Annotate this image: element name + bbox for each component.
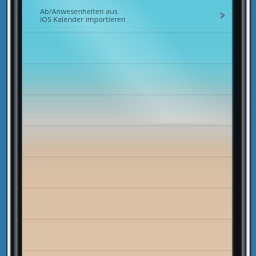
staticText: Ab/Anwesenheiten aus iOS Kalender import… (40, 6, 126, 24)
button[interactable] (22, 185, 234, 216)
button[interactable]: Ab/Anwesenheiten aus iOS Kalender import… (22, 0, 234, 30)
button[interactable] (22, 154, 234, 185)
button[interactable] (22, 123, 234, 154)
button[interactable] (22, 216, 234, 247)
button[interactable] (22, 92, 234, 123)
other: Open (211, 0, 234, 30)
button[interactable] (22, 61, 234, 92)
button[interactable] (22, 30, 234, 61)
